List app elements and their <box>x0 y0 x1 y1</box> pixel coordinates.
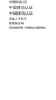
staticText: 获取验证码 <box>9 21 24 25</box>
staticText: 中国移动认证 <box>9 0 27 4</box>
staticText: 请输入手机号 <box>9 17 27 20</box>
staticText: 中国移动认证 <box>9 5 33 10</box>
staticText: 中国移动认证 <box>9 11 33 16</box>
staticText: 我已阅读并同意《中国移动认证服务条款》 <box>9 26 47 29</box>
